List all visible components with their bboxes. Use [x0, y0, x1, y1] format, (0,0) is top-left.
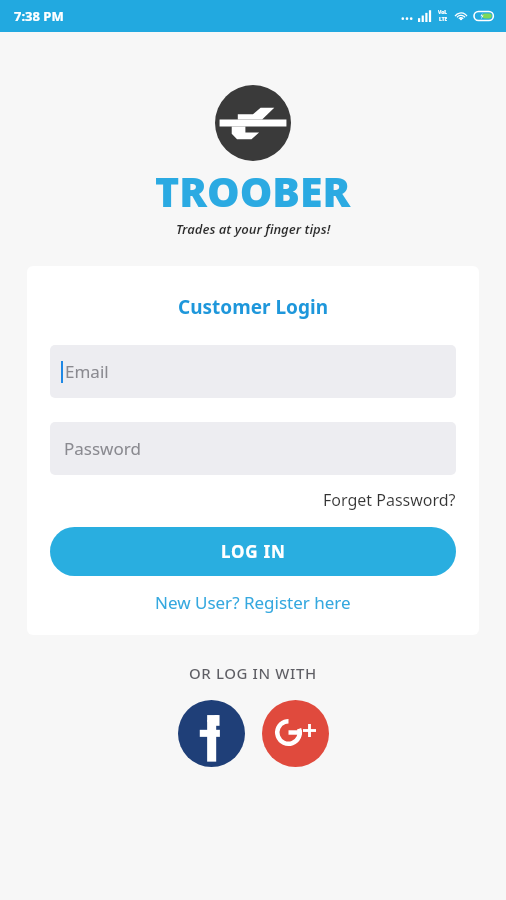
- button[interactable]: LOG IN: [50, 527, 456, 576]
- staticText: Customer Login: [27, 294, 479, 320]
- staticText: TROOBER: [155, 163, 351, 219]
- button[interactable]: Email: [50, 345, 456, 398]
- staticText: Password: [64, 437, 141, 460]
- staticText: LTE: [439, 16, 448, 23]
- staticText: Trades at your finger tips!: [176, 220, 331, 238]
- button[interactable]: Forget Password?: [321, 487, 458, 513]
- staticText: Email: [65, 360, 109, 383]
- button[interactable]: Log in with Facebook: [178, 700, 245, 767]
- staticText: OR LOG IN WITH: [189, 663, 317, 683]
- staticText: LOG IN: [221, 540, 286, 563]
- button[interactable]: New User? Register here: [149, 588, 357, 617]
- staticText: 7:38 PM: [14, 7, 64, 25]
- staticText: New User? Register here: [155, 591, 351, 614]
- staticText: Forget Password?: [323, 489, 456, 511]
- staticText: VoL: [438, 9, 448, 16]
- button[interactable]: Password: [50, 422, 456, 475]
- button[interactable]: Log in with Google Plus: [262, 700, 329, 767]
